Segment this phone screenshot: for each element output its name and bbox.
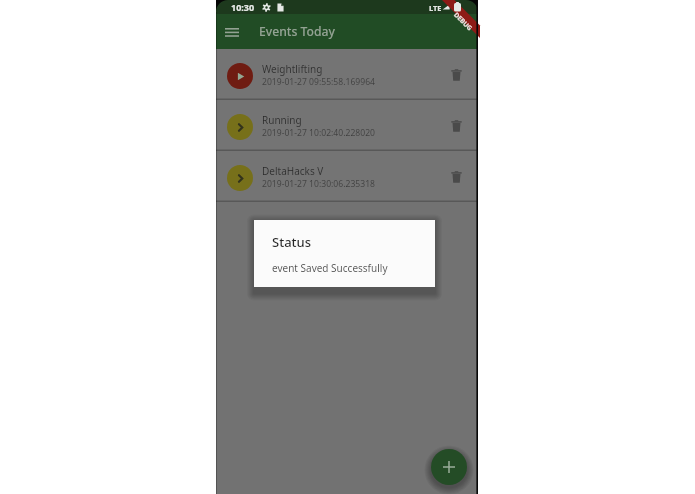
staticText: event Saved Successfully bbox=[272, 261, 388, 275]
staticText: 2019-01-27 10:02:40.228020 bbox=[262, 127, 375, 139]
button[interactable]: Delete bbox=[445, 63, 468, 86]
button[interactable]: Menu bbox=[221, 15, 242, 50]
button[interactable]: Add event bbox=[431, 449, 467, 485]
staticText: Running bbox=[262, 113, 302, 127]
button[interactable]: Running bbox=[216, 100, 478, 151]
button[interactable]: DeltaHacks V bbox=[216, 151, 478, 202]
staticText: Weightlifting bbox=[262, 62, 323, 76]
staticText: DEBUG bbox=[452, 10, 475, 33]
staticText: LTE bbox=[429, 3, 442, 13]
staticText: 10:30 bbox=[231, 1, 255, 13]
staticText: Status bbox=[272, 233, 312, 251]
staticText: 2019-01-27 10:30:06.235318 bbox=[262, 178, 375, 190]
staticText: DeltaHacks V bbox=[262, 164, 324, 178]
staticText: 2019-01-27 09:55:58.169964 bbox=[262, 76, 375, 88]
button[interactable]: Debug banner bbox=[442, 0, 480, 38]
button[interactable]: Weightlifting bbox=[216, 49, 478, 100]
staticText: Events Today bbox=[259, 23, 336, 40]
button[interactable]: Delete bbox=[445, 114, 468, 137]
button[interactable]: Delete bbox=[445, 165, 468, 188]
